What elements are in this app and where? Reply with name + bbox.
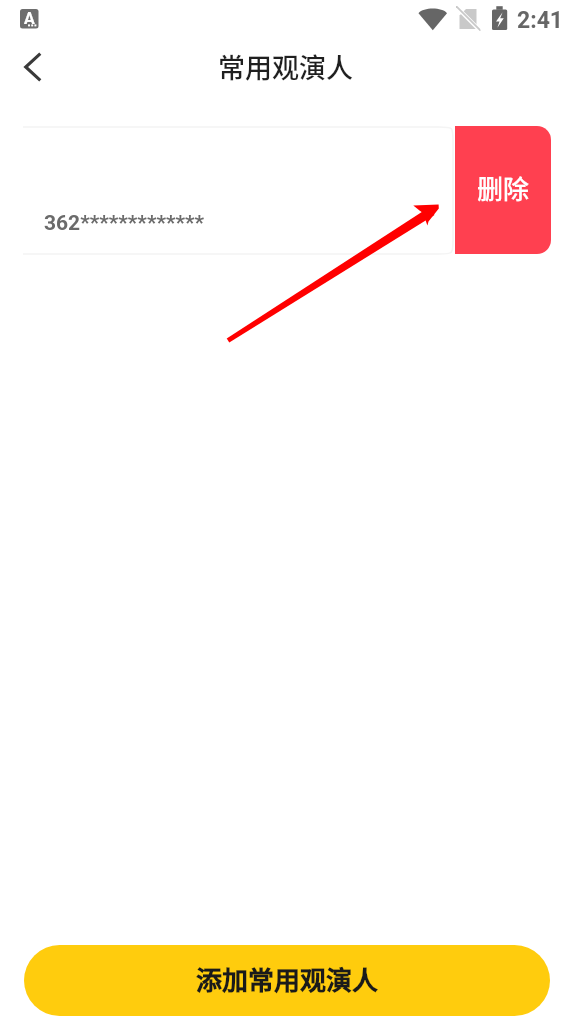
button[interactable]: 362*************: [23, 127, 453, 254]
button[interactable]: Back: [5, 39, 61, 95]
staticText: 删除: [477, 169, 530, 207]
button[interactable]: 添加常用观演人: [24, 945, 550, 1016]
staticText: 362*************: [44, 211, 205, 236]
staticText: A: [24, 9, 35, 28]
staticText: 添加常用观演人: [196, 960, 379, 998]
staticText: 2:41: [517, 7, 564, 34]
staticText: 常用观演人: [218, 47, 353, 86]
button[interactable]: 删除: [455, 126, 551, 254]
